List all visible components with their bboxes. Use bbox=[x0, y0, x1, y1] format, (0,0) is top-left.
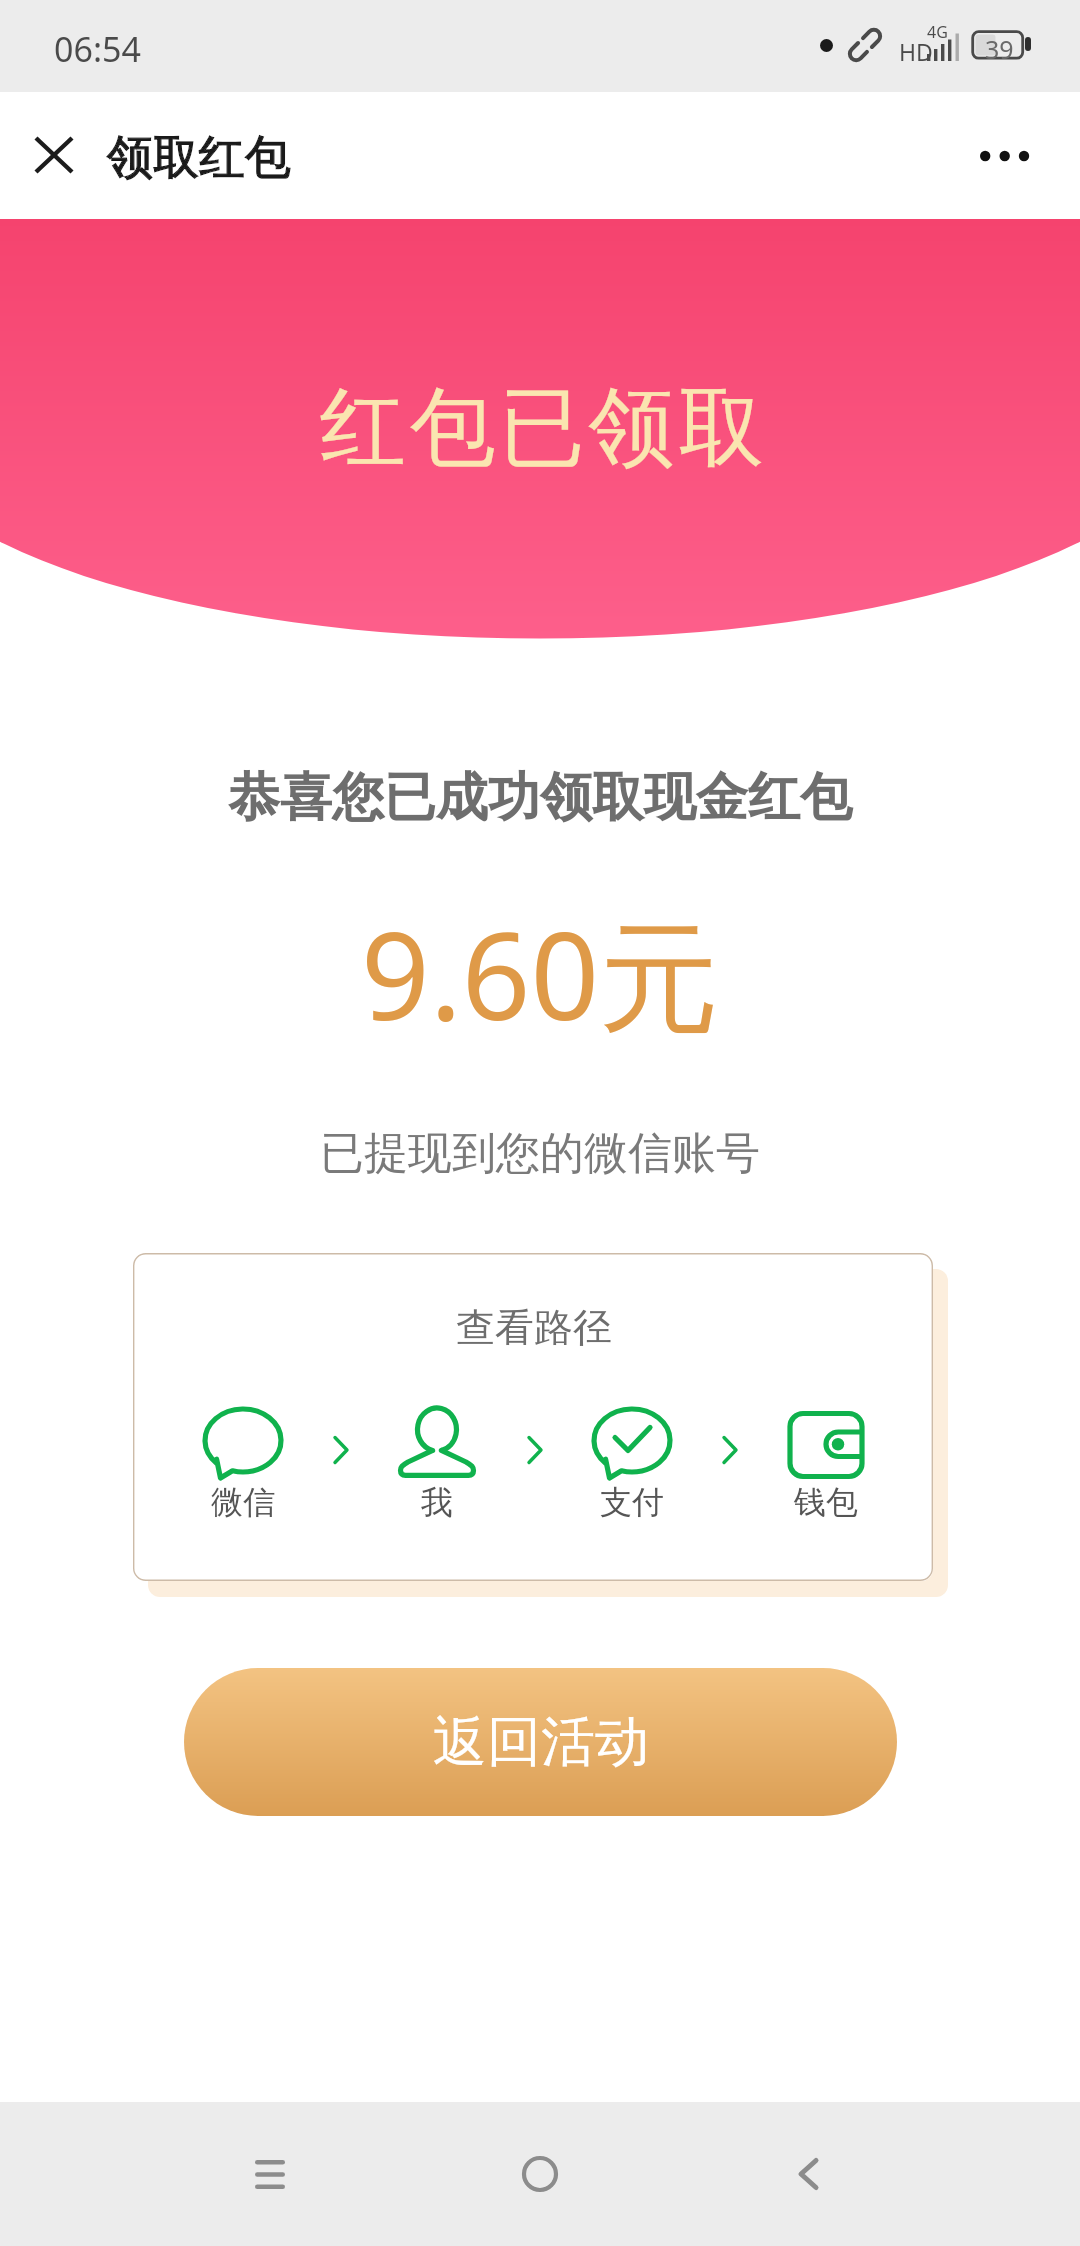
staticText: 领取红包 bbox=[107, 129, 291, 187]
staticText: 已提现到您的微信账号 bbox=[320, 1126, 760, 1181]
button[interactable]: Back bbox=[720, 2102, 900, 2246]
staticText: 支付 bbox=[600, 1482, 664, 1522]
staticText: 查看路径 bbox=[456, 1303, 612, 1352]
button[interactable]: 支付 bbox=[577, 1403, 687, 1523]
button[interactable]: Recent apps bbox=[180, 2102, 360, 2246]
staticText: 恭喜您已成功领取现金红包 bbox=[228, 765, 852, 831]
staticText: 39 bbox=[985, 32, 1014, 66]
button[interactable]: 返回活动 bbox=[184, 1668, 897, 1816]
staticText: 红包已领取 bbox=[318, 374, 766, 482]
staticText: HD bbox=[899, 36, 933, 67]
staticText: 领取红包 bbox=[107, 129, 291, 187]
staticText: 4G bbox=[927, 21, 948, 43]
button[interactable]: 我 bbox=[382, 1403, 492, 1523]
button[interactable]: 钱包 bbox=[771, 1403, 881, 1523]
button[interactable]: 微信 bbox=[188, 1403, 298, 1523]
staticText: 钱包 bbox=[794, 1482, 858, 1522]
staticText: 微信 bbox=[211, 1482, 275, 1522]
button[interactable]: Close bbox=[0, 92, 110, 219]
staticText: 06:54 bbox=[54, 26, 141, 72]
button[interactable]: More options bbox=[939, 92, 1080, 219]
staticText: 9.60元 bbox=[361, 892, 720, 1056]
button[interactable]: Home bbox=[450, 2102, 630, 2246]
staticText: 我 bbox=[421, 1482, 453, 1522]
staticText: 返回活动 bbox=[433, 1708, 649, 1776]
